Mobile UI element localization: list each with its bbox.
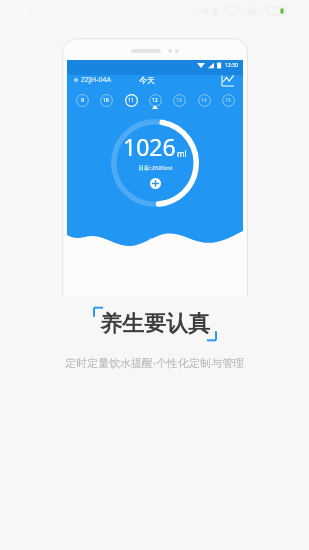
staticText: 12 [152,97,158,104]
button[interactable]: Add water [150,178,161,189]
staticText: ZZJH-04A [81,75,112,85]
button[interactable]: Water intake progress [107,115,203,211]
button[interactable]: 14 [195,91,213,109]
staticText: 13 [176,97,182,104]
button[interactable]: 9 [73,91,91,109]
staticText: 15 [225,97,231,104]
button[interactable]: 12 [146,91,164,109]
button[interactable]: 11 [122,91,140,109]
staticText: 养生要认真 [100,310,210,338]
staticText: 1026 [123,131,176,162]
staticText: 定时定量饮水提醒·个性化定制与管理 [65,355,244,370]
button[interactable]: 13 [170,91,188,109]
staticText: 目标:2680ml [138,164,173,172]
button[interactable]: 10 [97,91,115,109]
staticText: 06ppm [149,236,169,244]
staticText: 9 [81,97,84,104]
button[interactable]: 15 [219,91,237,109]
staticText: 11 [128,97,134,104]
staticText: 14 [201,97,207,104]
button[interactable]: 今天 [139,75,155,85]
staticText: 10 [103,97,109,104]
staticText: °C [79,236,86,244]
button[interactable]: Statistics chart [220,72,236,88]
button[interactable]: ZZJH-04A [74,75,139,85]
staticText: ml [177,148,187,159]
staticText: 12:30 [225,62,238,69]
